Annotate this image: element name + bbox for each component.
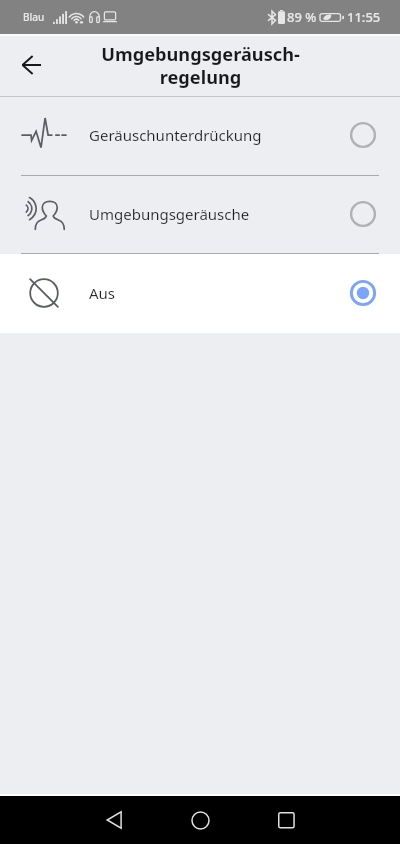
staticText: Umgebungsgeräusch- regelung — [101, 42, 300, 89]
button[interactable]: Zurück — [93, 797, 135, 843]
button[interactable]: Zurück — [9, 43, 53, 87]
staticText: 11:55 — [347, 8, 381, 26]
staticText: Umgebungsgeräusche — [89, 204, 250, 224]
button[interactable]: Übersicht — [265, 797, 307, 843]
button[interactable]: Startseite — [179, 797, 221, 843]
staticText: 89 % — [287, 8, 317, 26]
button[interactable]: Umgebungsgeräusche — [0, 176, 400, 253]
staticText: Blau — [23, 10, 45, 24]
button[interactable]: Aus — [0, 254, 400, 333]
button[interactable]: Geräuschunterdrückung — [0, 97, 400, 175]
staticText: Geräuschunterdrückung — [89, 125, 262, 145]
staticText: Aus — [89, 283, 116, 303]
